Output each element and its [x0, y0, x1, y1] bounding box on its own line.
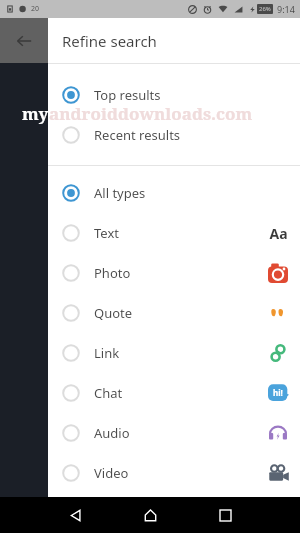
staticText: Recent results: [94, 126, 181, 144]
button[interactable]: Text: [48, 213, 300, 253]
staticText: 26%: [259, 5, 271, 13]
button[interactable]: Back: [60, 500, 90, 530]
button[interactable]: Home: [135, 500, 165, 530]
staticText: Quote: [94, 304, 133, 322]
staticText: Photo: [94, 264, 131, 282]
button[interactable]: Video: [48, 453, 300, 493]
staticText: Aa: [269, 224, 288, 243]
staticText: Link: [94, 344, 120, 362]
button[interactable]: Top results: [48, 75, 300, 115]
staticText: hi!: [273, 387, 283, 398]
button[interactable]: Photo: [48, 253, 300, 293]
button[interactable]: Audio: [48, 413, 300, 453]
button[interactable]: Quote: [48, 293, 300, 333]
staticText: Top results: [94, 86, 161, 104]
button[interactable]: Back: [0, 18, 48, 63]
button[interactable]: Chat: [48, 373, 300, 413]
staticText: All types: [94, 184, 146, 202]
staticText: my: [22, 102, 49, 125]
staticText: Video: [94, 464, 129, 482]
button[interactable]: Recent results: [48, 115, 300, 155]
staticText: Chat: [94, 384, 123, 402]
button[interactable]: All types: [48, 173, 300, 213]
staticText: Audio: [94, 424, 130, 442]
staticText: 20: [31, 4, 40, 14]
button[interactable]: Recents: [210, 500, 240, 530]
staticText: Text: [94, 224, 119, 242]
staticText: androiddownloads.com: [49, 102, 253, 125]
staticText: Refine search: [62, 31, 157, 51]
staticText: 9:14: [277, 3, 295, 15]
button[interactable]: Link: [48, 333, 300, 373]
